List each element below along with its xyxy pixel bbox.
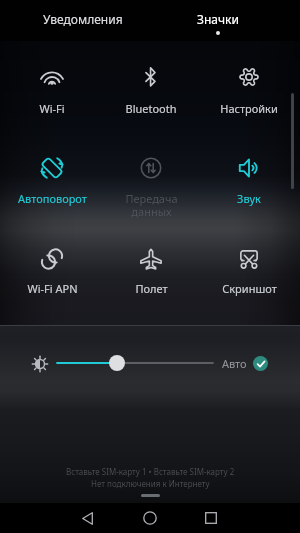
button[interactable]: Back [64, 503, 110, 533]
button[interactable]: Скриншот [202, 239, 296, 301]
button[interactable]: Передача данных [104, 148, 198, 210]
button[interactable]: Значки [150, 0, 285, 41]
staticText: Передача данных [125, 191, 178, 219]
button[interactable]: Уведомления [15, 0, 150, 41]
staticText: Автоповорот [18, 191, 87, 206]
button[interactable]: Звук [202, 148, 296, 210]
button[interactable]: Home [127, 503, 173, 533]
staticText: Полет [135, 281, 168, 296]
button[interactable]: Полет [104, 239, 198, 301]
staticText: Уведомления [43, 11, 123, 27]
staticText: Значки [197, 11, 239, 27]
staticText: Авто [222, 356, 247, 371]
button[interactable]: Wi-Fi APN [5, 239, 99, 301]
staticText: Wi-Fi APN [27, 281, 78, 296]
staticText: Нет подключения к Интернету [91, 478, 210, 489]
button[interactable]: Wi-Fi [5, 57, 99, 119]
button[interactable]: Авто [222, 353, 268, 373]
staticText: Bluetooth [125, 101, 177, 116]
staticText: Настройки [220, 101, 278, 116]
button[interactable]: Автоповорот [5, 148, 99, 210]
staticText: Wi-Fi [39, 101, 65, 116]
button[interactable]: Recents [188, 503, 234, 533]
button[interactable]: Настройки [202, 57, 296, 119]
button[interactable]: Bluetooth [104, 57, 198, 119]
staticText: Скриншот [222, 281, 277, 296]
staticText: Звук [237, 191, 261, 206]
staticText: Вставьте SIM-карту 1 • Вставьте SIM-карт… [66, 466, 235, 477]
